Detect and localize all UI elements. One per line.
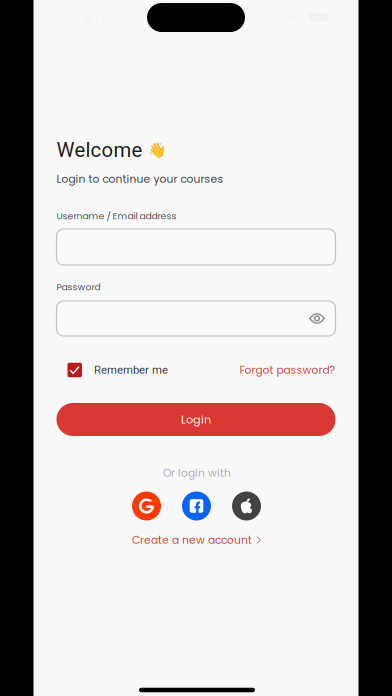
button[interactable]: Create a new account [121,531,271,549]
staticText: Create a new account [132,532,252,547]
button[interactable]: Show password [302,301,332,336]
button[interactable]: Forgot password? [239,358,335,382]
button[interactable]: Sign in with Google [132,491,161,520]
staticText: Remember me [94,363,168,377]
button[interactable]: Login [56,403,335,436]
button[interactable]: Sign in with Facebook [182,491,211,520]
staticText: 👋 [147,141,165,159]
staticText: Forgot password? [239,362,335,377]
staticText: Username / Email address [56,209,176,223]
staticText: Or login with [163,465,231,480]
staticText: Login to continue your courses [56,171,223,186]
button[interactable]: Remember me [56,358,168,382]
staticText: Login [181,412,211,427]
staticText: Password [56,280,100,294]
button[interactable]: Sign in with Apple [232,491,261,520]
staticText: Welcome [56,138,142,162]
